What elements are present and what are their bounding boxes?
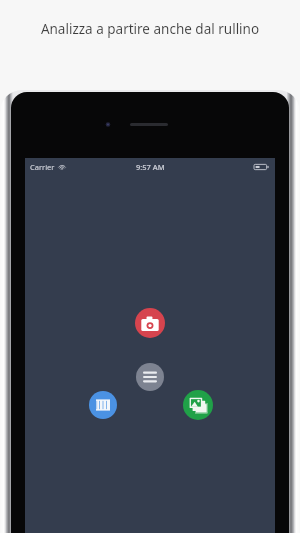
button[interactable]: Scatta foto [135, 308, 165, 338]
staticText: Analizza a partire anche dal rullino [18, 20, 282, 38]
button[interactable]: Archivio [89, 391, 117, 419]
button[interactable]: Menu [136, 363, 164, 391]
button[interactable]: Rullino foto [183, 390, 213, 420]
staticText: 9:57 AM [136, 162, 165, 172]
staticText: Carrier [30, 162, 55, 172]
